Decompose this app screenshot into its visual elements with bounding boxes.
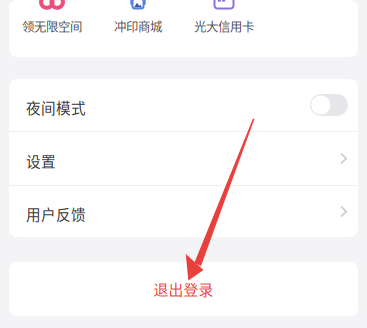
button[interactable]: 领无限空间 <box>9 0 95 35</box>
staticText: 光大信用卡 <box>194 17 254 35</box>
staticText: 退出登录 <box>153 278 213 300</box>
button[interactable]: 用户反馈 <box>9 186 358 237</box>
button[interactable]: 夜间模式 <box>9 79 358 131</box>
button[interactable]: 设置 <box>9 132 358 185</box>
staticText: 设置 <box>26 150 56 171</box>
staticText: 用户反馈 <box>26 203 86 224</box>
staticText: 冲印商城 <box>114 17 162 35</box>
staticText: 夜间模式 <box>26 97 86 118</box>
staticText: 领无限空间 <box>22 17 82 35</box>
button[interactable]: 退出登录 <box>9 262 358 316</box>
button[interactable]: 光大信用卡 <box>181 0 267 35</box>
button[interactable]: 冲印商城 <box>95 0 181 35</box>
